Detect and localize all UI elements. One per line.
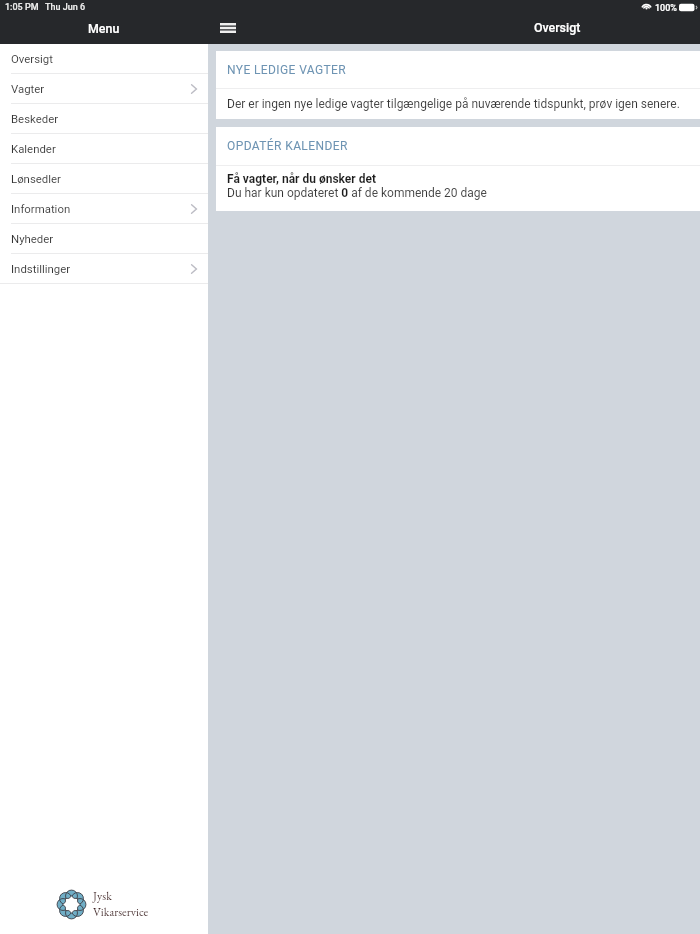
staticText: Vikarservice <box>93 904 149 920</box>
staticText: Nyheder <box>11 232 54 245</box>
button[interactable]: Få vagter, når du ønsker det <box>216 166 700 211</box>
button[interactable]: Indstillinger <box>0 254 208 284</box>
staticText: Oversigt <box>11 52 53 65</box>
button[interactable]: Oversigt <box>0 44 208 74</box>
staticText: 100% <box>655 3 677 14</box>
button[interactable]: Open navigation menu <box>214 17 242 39</box>
button[interactable]: Lønsedler <box>0 164 208 194</box>
staticText: Information <box>11 202 71 215</box>
button[interactable]: Der er ingen nye ledige vagter tilgængel… <box>216 89 700 119</box>
staticText: Jysk <box>93 888 112 904</box>
button[interactable]: Information <box>0 194 208 224</box>
staticText: 1:05 PM Thu Jun 6 <box>5 2 86 13</box>
staticText: Lønsedler <box>11 172 61 185</box>
staticText: OPDATÉR KALENDER <box>227 139 348 153</box>
staticText: Oversigt <box>534 20 581 35</box>
button[interactable]: Vagter <box>0 74 208 104</box>
staticText: Vagter <box>11 82 45 95</box>
button[interactable]: Nyheder <box>0 224 208 254</box>
staticText: NYE LEDIGE VAGTER <box>227 63 347 77</box>
staticText: Du har kun opdateret 0 af de kommende 20… <box>227 186 487 200</box>
button[interactable]: Kalender <box>0 134 208 164</box>
button[interactable]: Beskeder <box>0 104 208 134</box>
staticText: Menu <box>88 21 120 36</box>
staticText: Kalender <box>11 142 56 155</box>
staticText: Beskeder <box>11 112 59 125</box>
button[interactable]: Jysk Vikarservice <box>56 888 149 920</box>
staticText: Indstillinger <box>11 262 71 275</box>
staticText: Der er ingen nye ledige vagter tilgængel… <box>227 97 680 111</box>
staticText: Få vagter, når du ønsker det <box>227 172 377 186</box>
